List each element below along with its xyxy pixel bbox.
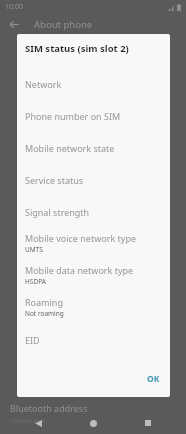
button[interactable]: Back [7, 17, 21, 31]
button[interactable]: EID [17, 324, 170, 356]
staticText: HSDPA [25, 277, 46, 286]
staticText: SIM status (sim slot 2) [25, 42, 129, 55]
staticText: Unavailable [10, 416, 46, 425]
button[interactable]: Mobile network state [17, 132, 170, 164]
staticText: EID [25, 334, 40, 346]
button[interactable]: Signal strength [17, 196, 170, 228]
button[interactable]: Recent apps [140, 415, 156, 431]
staticText: Roaming [25, 296, 63, 308]
staticText: Network [25, 78, 62, 90]
staticText: UMTS [25, 245, 43, 254]
button[interactable]: Mobile voice network type [17, 228, 170, 260]
staticText: Signal strength [25, 206, 90, 218]
staticText: Mobile voice network type [25, 232, 136, 244]
button[interactable]: Roaming [17, 292, 170, 324]
button[interactable]: Network [17, 68, 170, 100]
staticText: Service status [25, 174, 84, 186]
staticText: Mobile data network type [25, 264, 134, 276]
button[interactable]: Phone number on SIM [17, 100, 170, 132]
staticText: 10:00 [5, 2, 23, 12]
staticText: Phone number on SIM [25, 110, 121, 122]
staticText: Bluetooth address [10, 402, 88, 414]
button[interactable]: Mobile data network type [17, 260, 170, 292]
button[interactable]: Home [85, 415, 101, 431]
button[interactable]: Service status [17, 164, 170, 196]
button[interactable]: OK [137, 367, 170, 391]
staticText: Not roaming [25, 309, 64, 318]
button[interactable]: Back [30, 415, 46, 431]
staticText: Mobile network state [25, 142, 115, 154]
staticText: About phone [34, 18, 93, 31]
staticText: OK [147, 373, 160, 385]
